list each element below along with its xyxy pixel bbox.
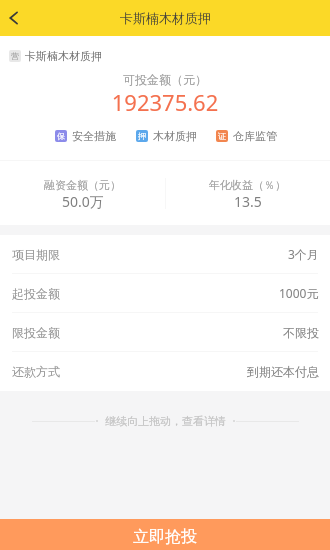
staticText: 融资金额（元） (44, 178, 121, 192)
staticText: 到期还本付息 (247, 364, 319, 379)
staticText: 项目期限 (12, 247, 60, 262)
staticText: 保 (57, 131, 65, 141)
staticText: 限投金额 (12, 325, 60, 340)
staticText: 安全措施 (72, 129, 116, 143)
button[interactable]: 项目期限 (0, 235, 330, 273)
button[interactable]: 立即抢投 (0, 519, 330, 550)
staticText: 年化收益（％） (209, 178, 286, 192)
staticText: 1000元 (279, 285, 319, 301)
staticText: 可投金额（元） (0, 72, 330, 87)
staticText: 卡斯楠木材质押 (120, 10, 211, 26)
staticText: 立即抢投 (133, 527, 197, 547)
staticText: 起投金额 (12, 286, 60, 301)
staticText: 证 (218, 131, 226, 141)
staticText: 13.5 (234, 192, 262, 211)
staticText: 卡斯楠木材质押 (25, 49, 102, 63)
button[interactable]: 起投金额 (0, 274, 330, 312)
staticText: 营 (11, 51, 19, 61)
staticText: 仓库监管 (233, 129, 277, 143)
staticText: 192375.62 (0, 87, 330, 117)
staticText: 继续向上拖动，查看详情 (105, 414, 226, 428)
button[interactable]: 还款方式 (0, 352, 330, 391)
button[interactable]: 限投金额 (0, 313, 330, 351)
staticText: 木材质押 (153, 129, 197, 143)
staticText: 3个月 (288, 246, 319, 262)
staticText: 不限投 (283, 325, 319, 340)
staticText: 还款方式 (12, 364, 60, 379)
staticText: 50.0万 (62, 192, 104, 211)
staticText: 押 (138, 131, 146, 141)
button[interactable]: Back (0, 2, 32, 34)
